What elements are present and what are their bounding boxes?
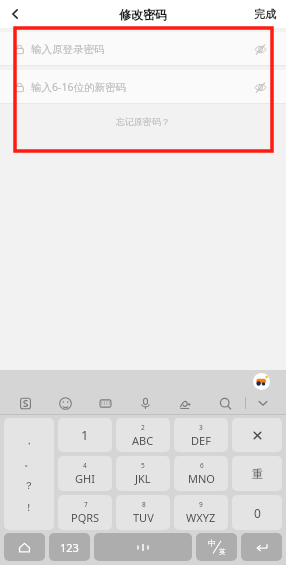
- button[interactable]: 2: [116, 418, 170, 452]
- button[interactable]: 6: [174, 456, 228, 491]
- button[interactable]: 忘记原密码？: [108, 114, 178, 129]
- button[interactable]: Emoji: [45, 392, 85, 414]
- button[interactable]: 8: [116, 495, 170, 530]
- staticText: 输入6-16位的新密码: [31, 80, 126, 94]
- button[interactable]: 7: [58, 495, 112, 530]
- staticText: MNO: [188, 471, 215, 486]
- staticText: 完成: [254, 7, 276, 21]
- button[interactable]: Enter: [241, 533, 282, 561]
- button[interactable]: Search: [205, 392, 245, 414]
- staticText: ，: [24, 434, 34, 447]
- button[interactable]: Handwriting: [165, 392, 205, 414]
- staticText: 1: [81, 426, 89, 444]
- button[interactable]: 5: [116, 456, 170, 491]
- staticText: 英: [219, 548, 226, 556]
- staticText: JKL: [135, 471, 151, 486]
- staticText: 9: [199, 500, 203, 509]
- button[interactable]: Keyboard layout: [85, 392, 125, 414]
- staticText: ？: [24, 479, 34, 492]
- staticText: ABC: [132, 433, 154, 448]
- button[interactable]: Space: [94, 533, 192, 561]
- button[interactable]: Show password: [248, 37, 272, 61]
- staticText: WXYZ: [186, 510, 216, 525]
- staticText: 123: [60, 540, 79, 555]
- button[interactable]: Voice input: [125, 392, 165, 414]
- button[interactable]: 完成: [244, 3, 286, 25]
- button[interactable]: 9: [174, 495, 228, 530]
- button[interactable]: 重: [232, 456, 282, 491]
- staticText: 2: [141, 423, 145, 432]
- staticText: 5: [141, 461, 145, 470]
- staticText: 重: [252, 467, 263, 481]
- staticText: 忘记原密码？: [116, 116, 170, 127]
- staticText: 中: [208, 538, 216, 548]
- staticText: 3: [199, 423, 203, 432]
- staticText: 修改密码: [119, 7, 167, 22]
- staticText: ！: [24, 501, 34, 514]
- staticText: 8: [142, 500, 146, 509]
- staticText: 。: [24, 456, 34, 469]
- button[interactable]: 4: [58, 456, 112, 491]
- button[interactable]: Delete: [232, 418, 282, 452]
- staticText: TUV: [133, 510, 154, 525]
- button[interactable]: Sogou: [6, 392, 45, 414]
- button[interactable]: 0: [232, 495, 282, 530]
- button[interactable]: Show password: [248, 75, 272, 99]
- button[interactable]: Hide keyboard: [246, 392, 280, 414]
- button[interactable]: Switch Chinese English: [196, 533, 237, 561]
- staticText: 7: [84, 500, 88, 509]
- staticText: PQRS: [71, 510, 100, 525]
- button[interactable]: 1: [58, 418, 112, 452]
- button[interactable]: ，: [4, 418, 54, 530]
- button[interactable]: 123: [49, 533, 90, 561]
- staticText: DEF: [191, 433, 211, 448]
- staticText: 0: [254, 505, 261, 521]
- button[interactable]: 3: [174, 418, 228, 452]
- staticText: GHI: [75, 471, 95, 486]
- staticText: 输入原登录密码: [31, 43, 105, 56]
- staticText: 4: [83, 461, 87, 470]
- button[interactable]: Home: [4, 533, 45, 561]
- button[interactable]: Back: [0, 0, 30, 28]
- staticText: 6: [200, 461, 204, 470]
